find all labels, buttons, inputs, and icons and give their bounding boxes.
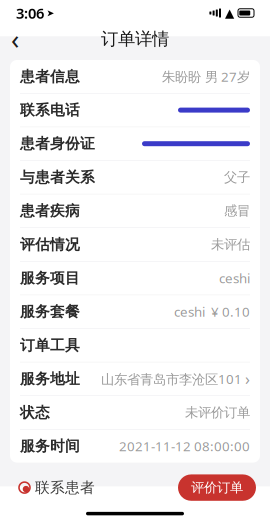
staticText: 服务地址 <box>20 370 80 388</box>
staticText: 患者信息 <box>20 67 80 85</box>
staticText: 山东省青岛市李沧区101 <box>101 370 242 388</box>
staticText: ceshi ¥ 0.10 <box>174 303 250 320</box>
staticText: 订单工具 <box>20 336 80 354</box>
staticText: 患者疾病 <box>20 202 80 220</box>
staticText: 联系患者 <box>35 479 95 497</box>
staticText: 感冒 <box>224 203 250 219</box>
staticText: 订单详情 <box>101 28 169 50</box>
staticText: 评价订单 <box>191 479 243 496</box>
button[interactable]: 服务地址 <box>10 362 260 395</box>
staticText: 服务套餐 <box>20 303 80 321</box>
staticText: 联系电话 <box>20 101 80 119</box>
staticText: 状态 <box>20 403 50 421</box>
staticText: 未评价订单 <box>185 404 250 421</box>
staticText: 与患者关系 <box>20 168 95 186</box>
staticText: 服务项目 <box>20 269 80 287</box>
staticText: ceshi <box>219 269 250 287</box>
staticText: ‹ <box>11 21 19 57</box>
staticText: 未评估 <box>211 236 250 253</box>
button[interactable]: Back <box>0 26 30 52</box>
staticText: › <box>245 368 250 389</box>
staticText: 朱盼盼 男 27岁 <box>162 68 250 85</box>
button[interactable]: 联系患者 <box>14 473 99 503</box>
staticText: 父子 <box>224 169 250 185</box>
staticText: 服务时间 <box>20 437 80 455</box>
staticText: 2021-11-12 08:00:00 <box>119 437 250 455</box>
staticText: 患者身份证 <box>20 135 95 153</box>
staticText: 评估情况 <box>20 235 80 253</box>
button[interactable]: 评价订单 <box>178 474 256 501</box>
